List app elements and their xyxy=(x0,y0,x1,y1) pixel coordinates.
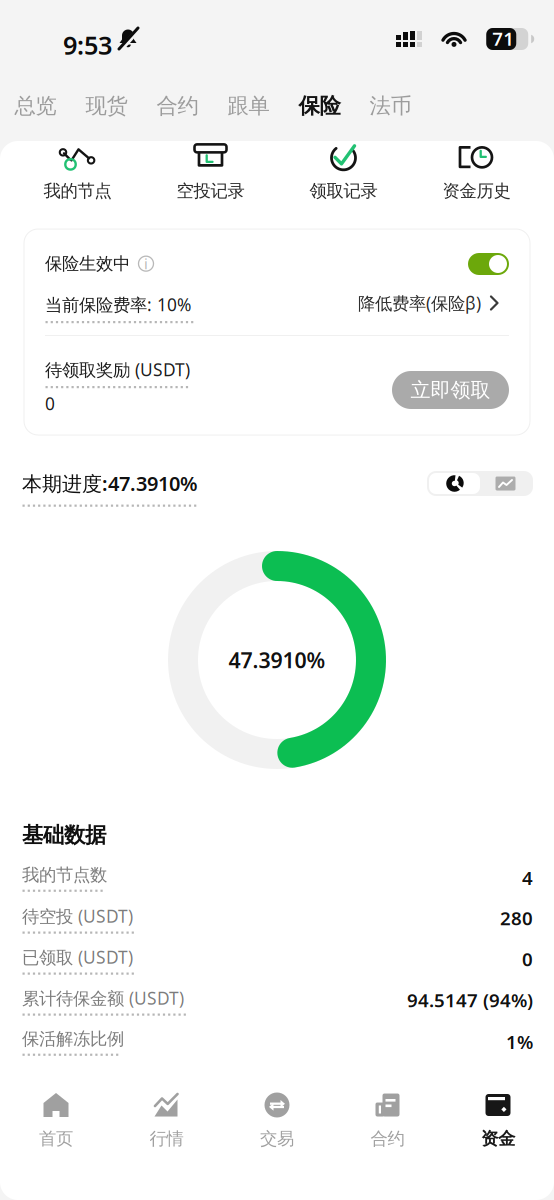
staticText: 280 xyxy=(500,905,533,930)
button[interactable]: 交易 xyxy=(222,1092,332,1164)
button[interactable]: 领取记录 xyxy=(277,146,410,199)
staticText: 合约 xyxy=(370,1128,404,1149)
staticText: 1% xyxy=(506,1029,533,1054)
button[interactable]: 行情 xyxy=(111,1092,222,1164)
button[interactable]: 现货 xyxy=(71,92,142,120)
staticText: 保活解冻比例 xyxy=(22,1028,124,1050)
button[interactable]: 合约 xyxy=(332,1092,443,1164)
staticText: 0 xyxy=(45,392,55,415)
staticText: 47.3910% xyxy=(228,646,325,674)
button[interactable]: 合约 xyxy=(142,92,213,120)
staticText: 行情 xyxy=(149,1128,183,1149)
staticText: 基础数据 xyxy=(22,822,106,848)
button[interactable]: 跟单 xyxy=(213,92,284,120)
staticText: 0 xyxy=(522,946,533,971)
staticText: 法币 xyxy=(369,93,411,119)
staticText: 首页 xyxy=(39,1128,73,1149)
staticText: 保险生效中 xyxy=(45,253,130,274)
staticText: 空投记录 xyxy=(176,180,244,202)
staticText: 立即领取 xyxy=(410,378,490,402)
button[interactable]: 总览 xyxy=(0,92,71,120)
button[interactable]: 立即领取 xyxy=(392,371,509,409)
staticText: 领取记录 xyxy=(309,180,377,202)
button[interactable]: 空投记录 xyxy=(144,146,277,199)
button[interactable]: 降低费率(保险β) xyxy=(358,293,499,313)
staticText: 累计待保金额 (USDT) xyxy=(22,986,184,1009)
staticText: 跟单 xyxy=(227,93,269,119)
staticText: 当前保险费率: 10% xyxy=(45,293,191,316)
staticText: 降低费率(保险β) xyxy=(358,291,481,314)
button[interactable]: 首页 xyxy=(1,1092,111,1164)
staticText: 现货 xyxy=(85,93,127,119)
staticText: 我的节点数 xyxy=(22,864,107,886)
staticText: 94.5147 (94%) xyxy=(407,987,533,1012)
button[interactable]: 资金 xyxy=(443,1092,553,1164)
staticText: 9:53 xyxy=(63,28,112,62)
button[interactable]: Donut chart view xyxy=(429,473,480,494)
button[interactable]: Insurance active toggle xyxy=(468,253,509,275)
staticText: 已领取 (USDT) xyxy=(22,945,133,968)
staticText: 保险 xyxy=(298,93,340,119)
staticText: 71 xyxy=(492,26,514,51)
staticText: 交易 xyxy=(260,1128,294,1149)
staticText: 待空投 (USDT) xyxy=(22,904,133,927)
button[interactable]: 资金历史 xyxy=(410,146,543,199)
staticText: 我的节点 xyxy=(43,180,111,202)
staticText: 4 xyxy=(522,865,533,890)
staticText: 合约 xyxy=(156,93,198,119)
button[interactable]: 保险 xyxy=(284,92,355,120)
staticText: 资金 xyxy=(481,1128,515,1149)
staticText: 本期进度:47.3910% xyxy=(22,470,198,497)
staticText: i xyxy=(144,254,148,273)
button[interactable]: 我的节点 xyxy=(11,146,144,199)
button[interactable]: 法币 xyxy=(355,92,426,120)
button[interactable]: Line chart view xyxy=(480,473,531,494)
staticText: 资金历史 xyxy=(442,180,510,202)
staticText: 总览 xyxy=(14,93,56,119)
staticText: 待领取奖励 (USDT) xyxy=(45,358,190,381)
